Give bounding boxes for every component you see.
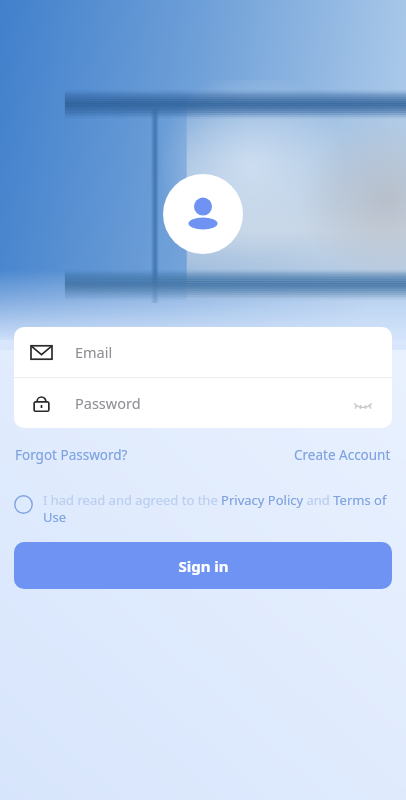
button[interactable]: Sign in: [14, 542, 392, 589]
button[interactable]: Forgot Password?: [15, 442, 128, 468]
staticText: Email: [75, 342, 113, 362]
button[interactable]: Show password: [350, 390, 376, 416]
other: Profile avatar: [163, 174, 243, 254]
staticText: Forgot Password?: [15, 446, 128, 464]
button[interactable]: Password: [14, 378, 392, 428]
button[interactable]: I had read and agreed to the Privacy Pol…: [0, 491, 406, 526]
staticText: Password: [75, 393, 141, 413]
staticText: Sign in: [178, 556, 229, 576]
button[interactable]: Email: [14, 327, 392, 377]
staticText: Create Account: [294, 446, 391, 464]
button[interactable]: Create Account: [294, 442, 391, 468]
staticText: I had read and agreed to the Privacy Pol…: [43, 491, 392, 526]
